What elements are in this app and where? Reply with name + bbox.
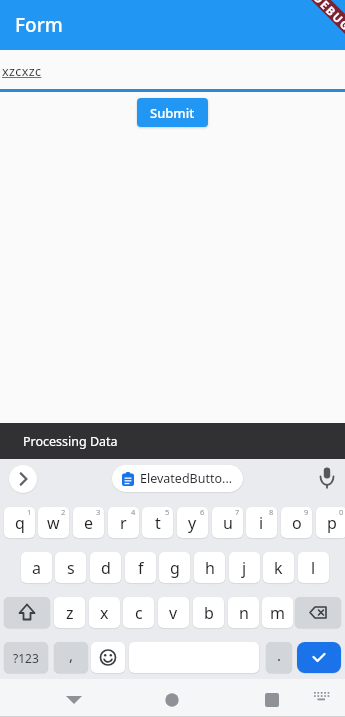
button[interactable]: o bbox=[281, 507, 312, 538]
staticText: 0 bbox=[339, 507, 344, 517]
staticText: l bbox=[311, 557, 316, 579]
button[interactable] bbox=[262, 689, 282, 709]
staticText: a bbox=[32, 557, 41, 579]
button[interactable]: ?123 bbox=[4, 642, 48, 673]
button[interactable] bbox=[4, 597, 50, 628]
button[interactable]: t bbox=[142, 507, 173, 538]
staticText: v bbox=[169, 602, 178, 624]
button[interactable] bbox=[297, 642, 341, 673]
button[interactable]: j bbox=[229, 552, 260, 583]
button[interactable] bbox=[313, 464, 341, 492]
button[interactable]: Processing Data bbox=[0, 423, 345, 459]
button[interactable]: a bbox=[21, 552, 52, 583]
staticText: 4 bbox=[131, 507, 136, 517]
button[interactable]: l bbox=[298, 552, 329, 583]
button[interactable]: x bbox=[89, 597, 120, 628]
staticText: z bbox=[66, 602, 74, 624]
button[interactable]: u bbox=[212, 507, 243, 538]
button[interactable]: p bbox=[316, 507, 345, 538]
button[interactable]: ElevatedButto... bbox=[112, 465, 243, 492]
button[interactable]: c bbox=[123, 597, 154, 628]
button[interactable]: f bbox=[125, 552, 156, 583]
staticText: . bbox=[277, 645, 282, 665]
button[interactable]: i bbox=[246, 507, 277, 538]
staticText: 5 bbox=[165, 507, 170, 517]
button[interactable]: q bbox=[4, 507, 35, 538]
staticText: f bbox=[138, 557, 144, 579]
staticText: xzcxzc bbox=[2, 63, 42, 80]
button[interactable]: m bbox=[262, 597, 293, 628]
staticText: 9 bbox=[304, 507, 309, 517]
staticText: t bbox=[155, 512, 161, 534]
staticText: ?123 bbox=[13, 650, 39, 666]
button[interactable] bbox=[162, 689, 182, 709]
staticText: p bbox=[327, 512, 337, 534]
button[interactable] bbox=[91, 642, 125, 673]
button[interactable]: v bbox=[158, 597, 189, 628]
staticText: Submit bbox=[150, 104, 195, 122]
staticText: d bbox=[101, 557, 111, 579]
button[interactable]: b bbox=[193, 597, 224, 628]
button[interactable] bbox=[312, 691, 332, 707]
button[interactable]: Submit bbox=[137, 98, 208, 127]
staticText: u bbox=[223, 512, 233, 534]
staticText: j bbox=[242, 557, 247, 579]
staticText: w bbox=[47, 512, 60, 534]
button[interactable]: w bbox=[38, 507, 69, 538]
button[interactable]: e bbox=[73, 507, 104, 538]
staticText: e bbox=[84, 512, 94, 534]
staticText: , bbox=[69, 645, 74, 665]
button[interactable]: , bbox=[54, 642, 88, 673]
staticText: 8 bbox=[269, 507, 274, 517]
button[interactable]: s bbox=[55, 552, 86, 583]
staticText: h bbox=[205, 557, 215, 579]
staticText: r bbox=[120, 512, 127, 534]
button[interactable]: d bbox=[90, 552, 121, 583]
staticText: 2 bbox=[61, 507, 66, 517]
staticText: g bbox=[170, 557, 180, 579]
staticText: 1 bbox=[27, 507, 32, 517]
staticText: 7 bbox=[235, 507, 240, 517]
button[interactable]: n bbox=[228, 597, 259, 628]
staticText: c bbox=[135, 602, 143, 624]
button[interactable]: r bbox=[108, 507, 139, 538]
staticText: s bbox=[67, 557, 75, 579]
staticText: 3 bbox=[96, 507, 101, 517]
staticText: 6 bbox=[200, 507, 205, 517]
staticText: i bbox=[259, 512, 264, 534]
staticText: ElevatedButto... bbox=[140, 470, 233, 487]
button[interactable] bbox=[295, 597, 341, 628]
button[interactable]: g bbox=[159, 552, 190, 583]
button[interactable]: y bbox=[177, 507, 208, 538]
staticText: o bbox=[292, 512, 302, 534]
staticText: DEBUG bbox=[311, 0, 345, 34]
staticText: Processing Data bbox=[23, 433, 118, 450]
staticText: Form bbox=[15, 12, 63, 38]
button[interactable]: h bbox=[194, 552, 225, 583]
staticText: q bbox=[15, 512, 25, 534]
staticText: y bbox=[188, 512, 197, 534]
staticText: m bbox=[270, 602, 285, 624]
button[interactable]: k bbox=[263, 552, 294, 583]
button[interactable]: z bbox=[54, 597, 85, 628]
staticText: n bbox=[239, 602, 249, 624]
staticText: k bbox=[274, 557, 283, 579]
button[interactable]: . bbox=[266, 642, 292, 673]
staticText: x bbox=[100, 602, 109, 624]
button[interactable] bbox=[9, 465, 37, 493]
button[interactable] bbox=[64, 689, 84, 709]
staticText: b bbox=[204, 602, 214, 624]
button[interactable]: xzcxzc bbox=[0, 50, 345, 91]
